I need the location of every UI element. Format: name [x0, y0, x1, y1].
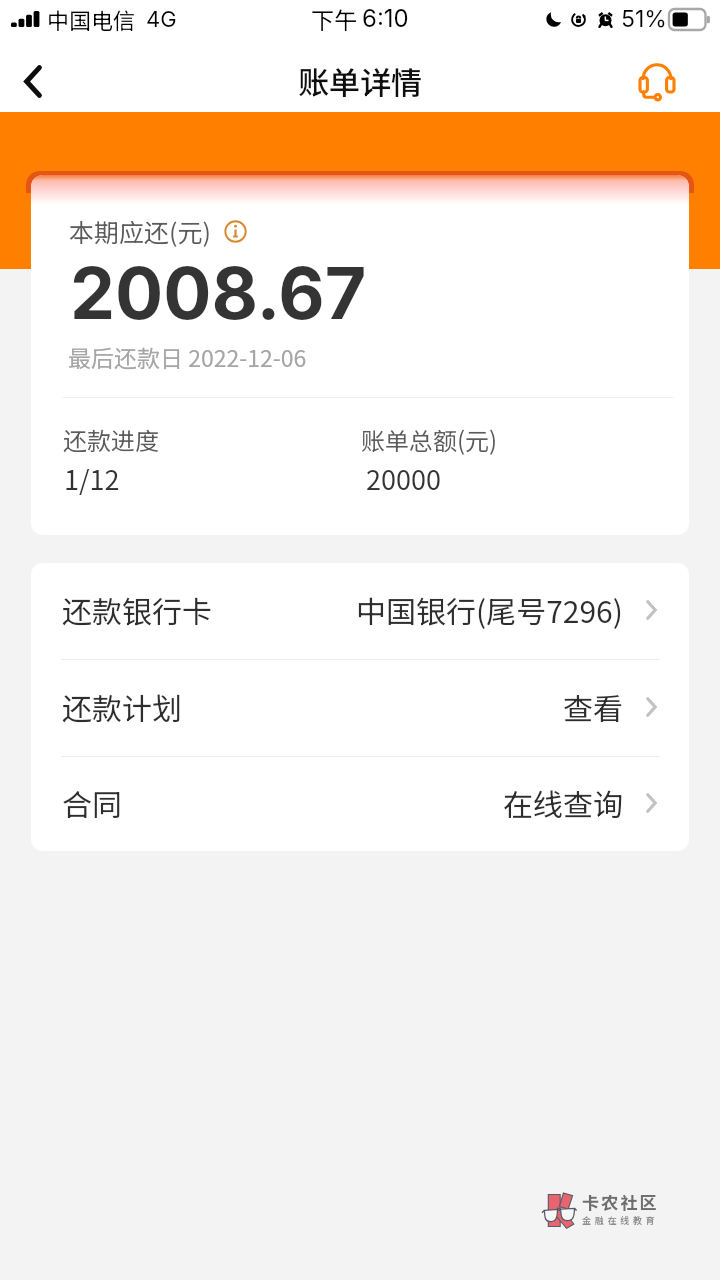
staticText: 卡农社区	[582, 1189, 659, 1214]
staticText: 中国电信	[47, 3, 136, 35]
button[interactable]: 合同	[31, 757, 689, 851]
staticText: 在线查询	[503, 781, 623, 824]
staticText: 4G	[146, 6, 177, 33]
staticText: 最后还款日 2022-12-06	[68, 340, 307, 373]
staticText: 合同	[62, 781, 122, 824]
staticText: 20000	[366, 459, 441, 498]
staticText: 中国银行(尾号7296)	[356, 588, 623, 631]
staticText: 6:10	[362, 4, 409, 33]
staticText: 还款计划	[62, 685, 182, 728]
staticText: 下午	[311, 2, 357, 35]
staticText: 2008.67	[70, 250, 367, 337]
staticText: 还款银行卡	[62, 588, 212, 631]
button[interactable]: 还款银行卡	[31, 563, 689, 659]
staticText: 还款进度	[63, 422, 159, 457]
staticText: 账单总额(元)	[361, 422, 498, 457]
staticText: 51%	[621, 5, 667, 33]
staticText: 查看	[563, 685, 623, 728]
button[interactable]: 还款计划	[31, 660, 689, 756]
staticText: 本期应还(元)	[69, 213, 211, 249]
button[interactable]: Back	[0, 50, 66, 112]
staticText: 账单详情	[298, 58, 422, 103]
staticText: 1/12	[64, 459, 120, 498]
staticText: 金融在线教育	[582, 1214, 659, 1227]
button[interactable]: Customer service	[594, 50, 720, 112]
